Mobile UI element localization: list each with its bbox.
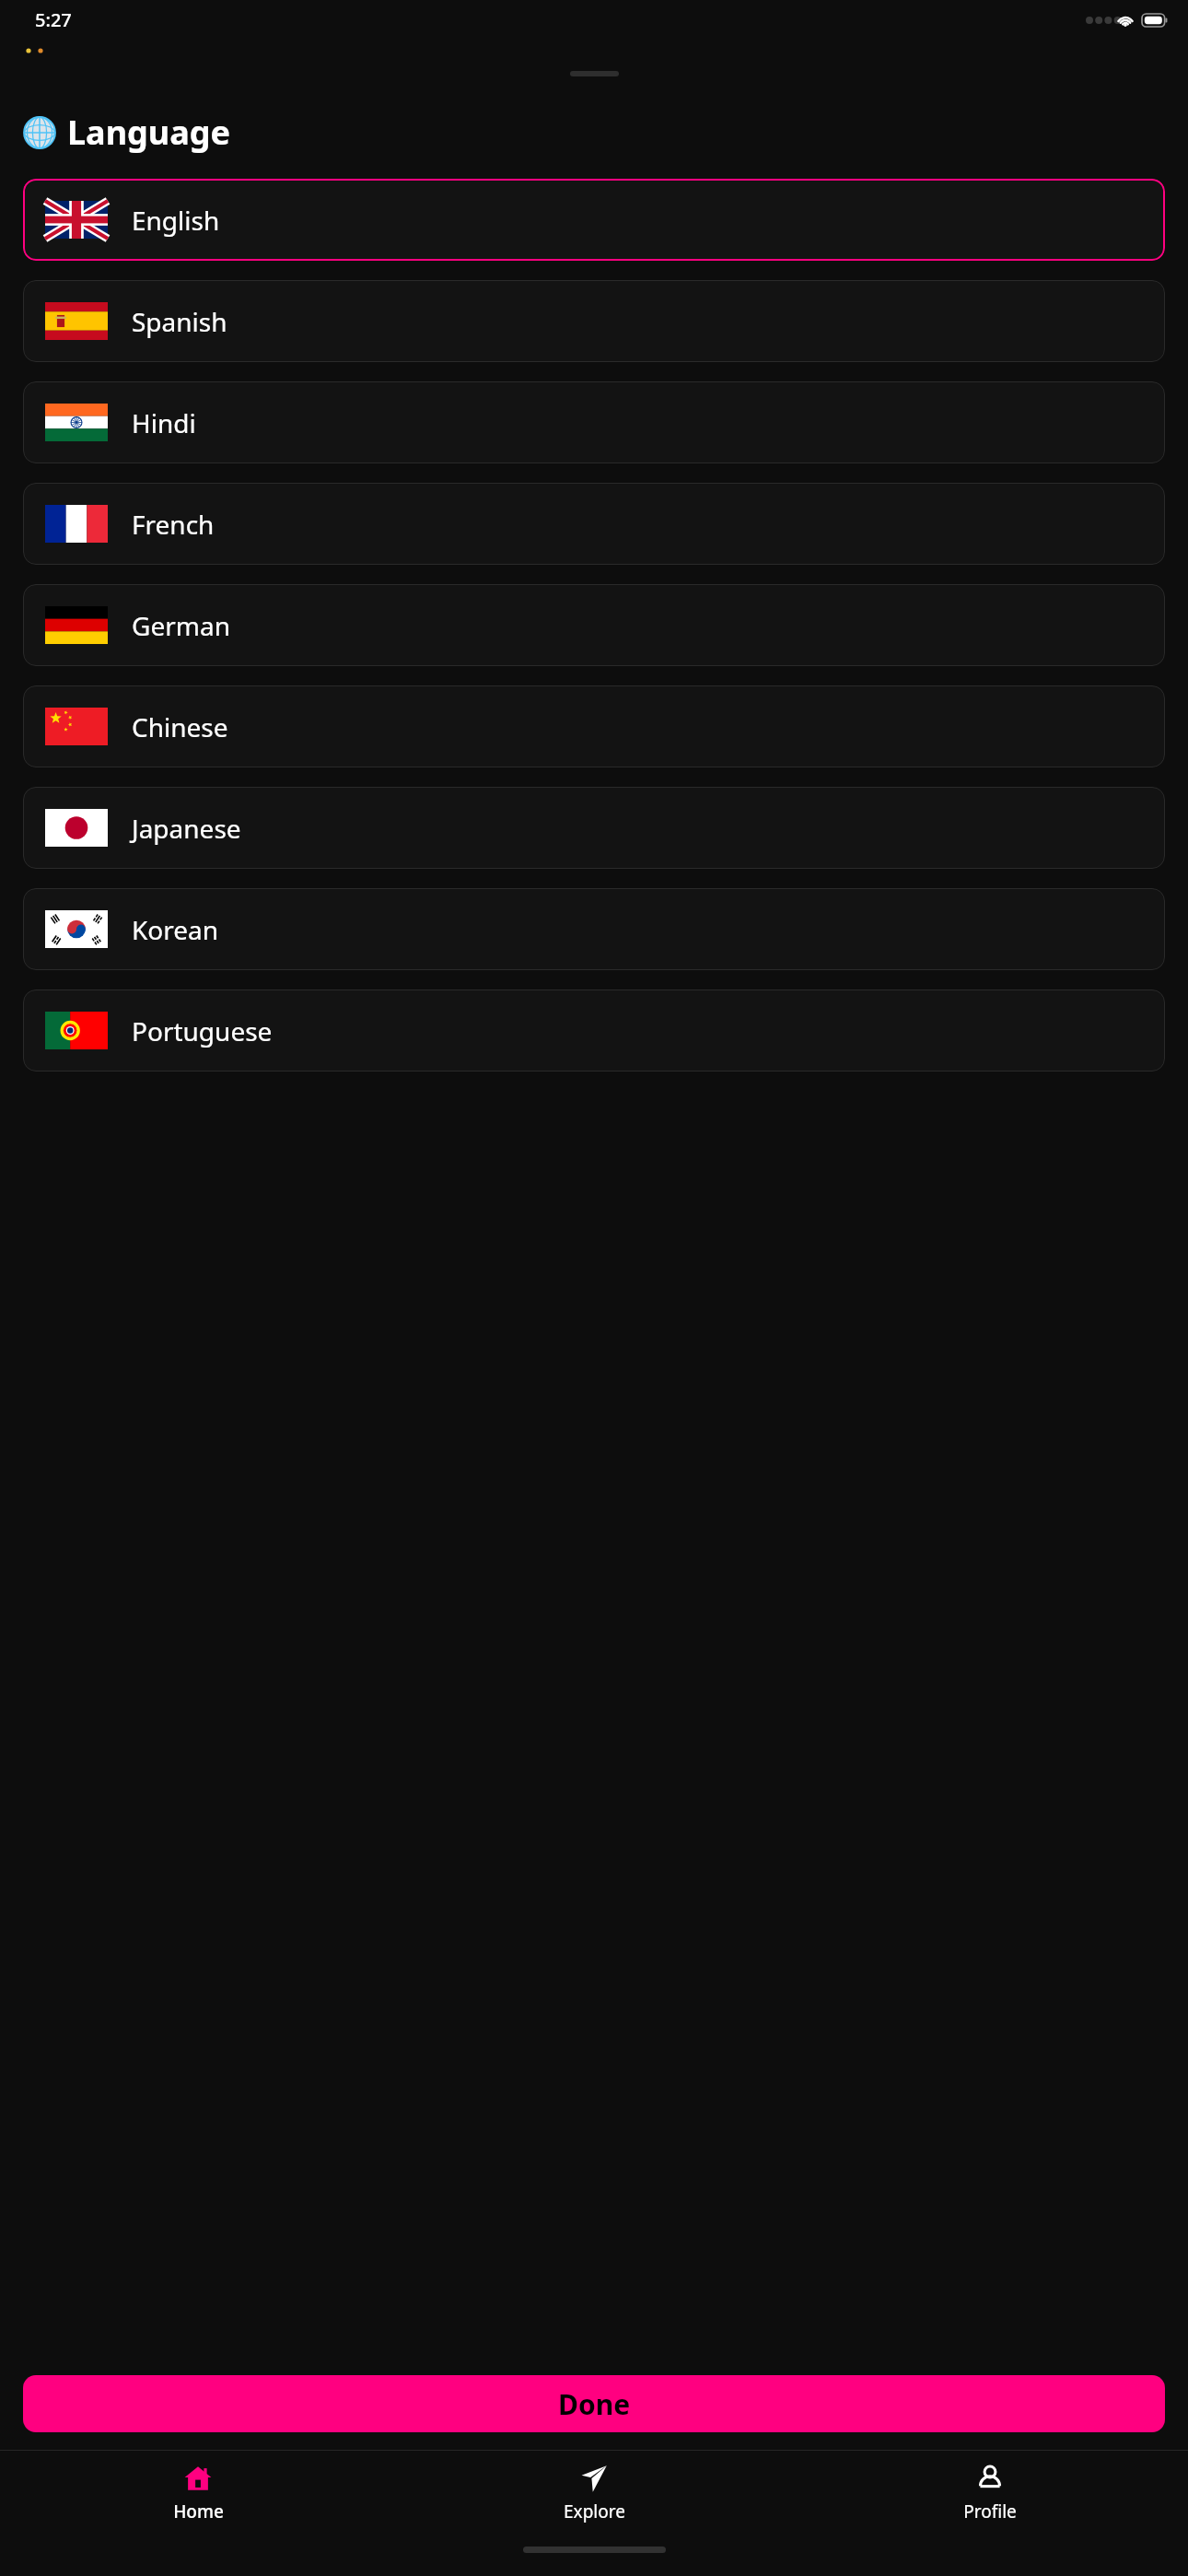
staticText: French: [132, 507, 215, 542]
staticText: Home: [173, 2500, 224, 2523]
staticText: Portuguese: [132, 1013, 273, 1048]
other: Profile: [975, 2464, 1005, 2493]
button[interactable]: Korean: [23, 888, 1165, 970]
staticText: Hindi: [132, 405, 196, 440]
staticText: Chinese: [132, 709, 228, 744]
button[interactable]: French: [23, 483, 1165, 565]
button[interactable]: Explore: [396, 2451, 792, 2535]
button[interactable]: Done: [23, 2375, 1165, 2432]
button[interactable]: Japanese: [23, 787, 1165, 869]
button[interactable]: Spanish: [23, 280, 1165, 362]
staticText: Korean: [132, 912, 219, 947]
staticText: Spanish: [132, 304, 227, 339]
button[interactable]: Hindi: [23, 381, 1165, 463]
button[interactable]: Chinese: [23, 685, 1165, 767]
button[interactable]: Home: [0, 2451, 396, 2535]
button[interactable]: German: [23, 584, 1165, 666]
staticText: English: [132, 203, 220, 238]
staticText: German: [132, 608, 230, 643]
button[interactable]: Profile: [792, 2451, 1188, 2535]
staticText: Profile: [963, 2500, 1017, 2523]
staticText: Explore: [564, 2500, 625, 2523]
button[interactable]: Portuguese: [23, 989, 1165, 1071]
staticText: 5:27: [35, 7, 72, 32]
staticText: Japanese: [132, 811, 241, 846]
other: Home: [183, 2464, 213, 2493]
staticText: Language: [67, 110, 231, 155]
staticText: Done: [558, 2385, 631, 2423]
button[interactable]: English: [23, 179, 1165, 261]
other: Explore: [579, 2464, 609, 2493]
